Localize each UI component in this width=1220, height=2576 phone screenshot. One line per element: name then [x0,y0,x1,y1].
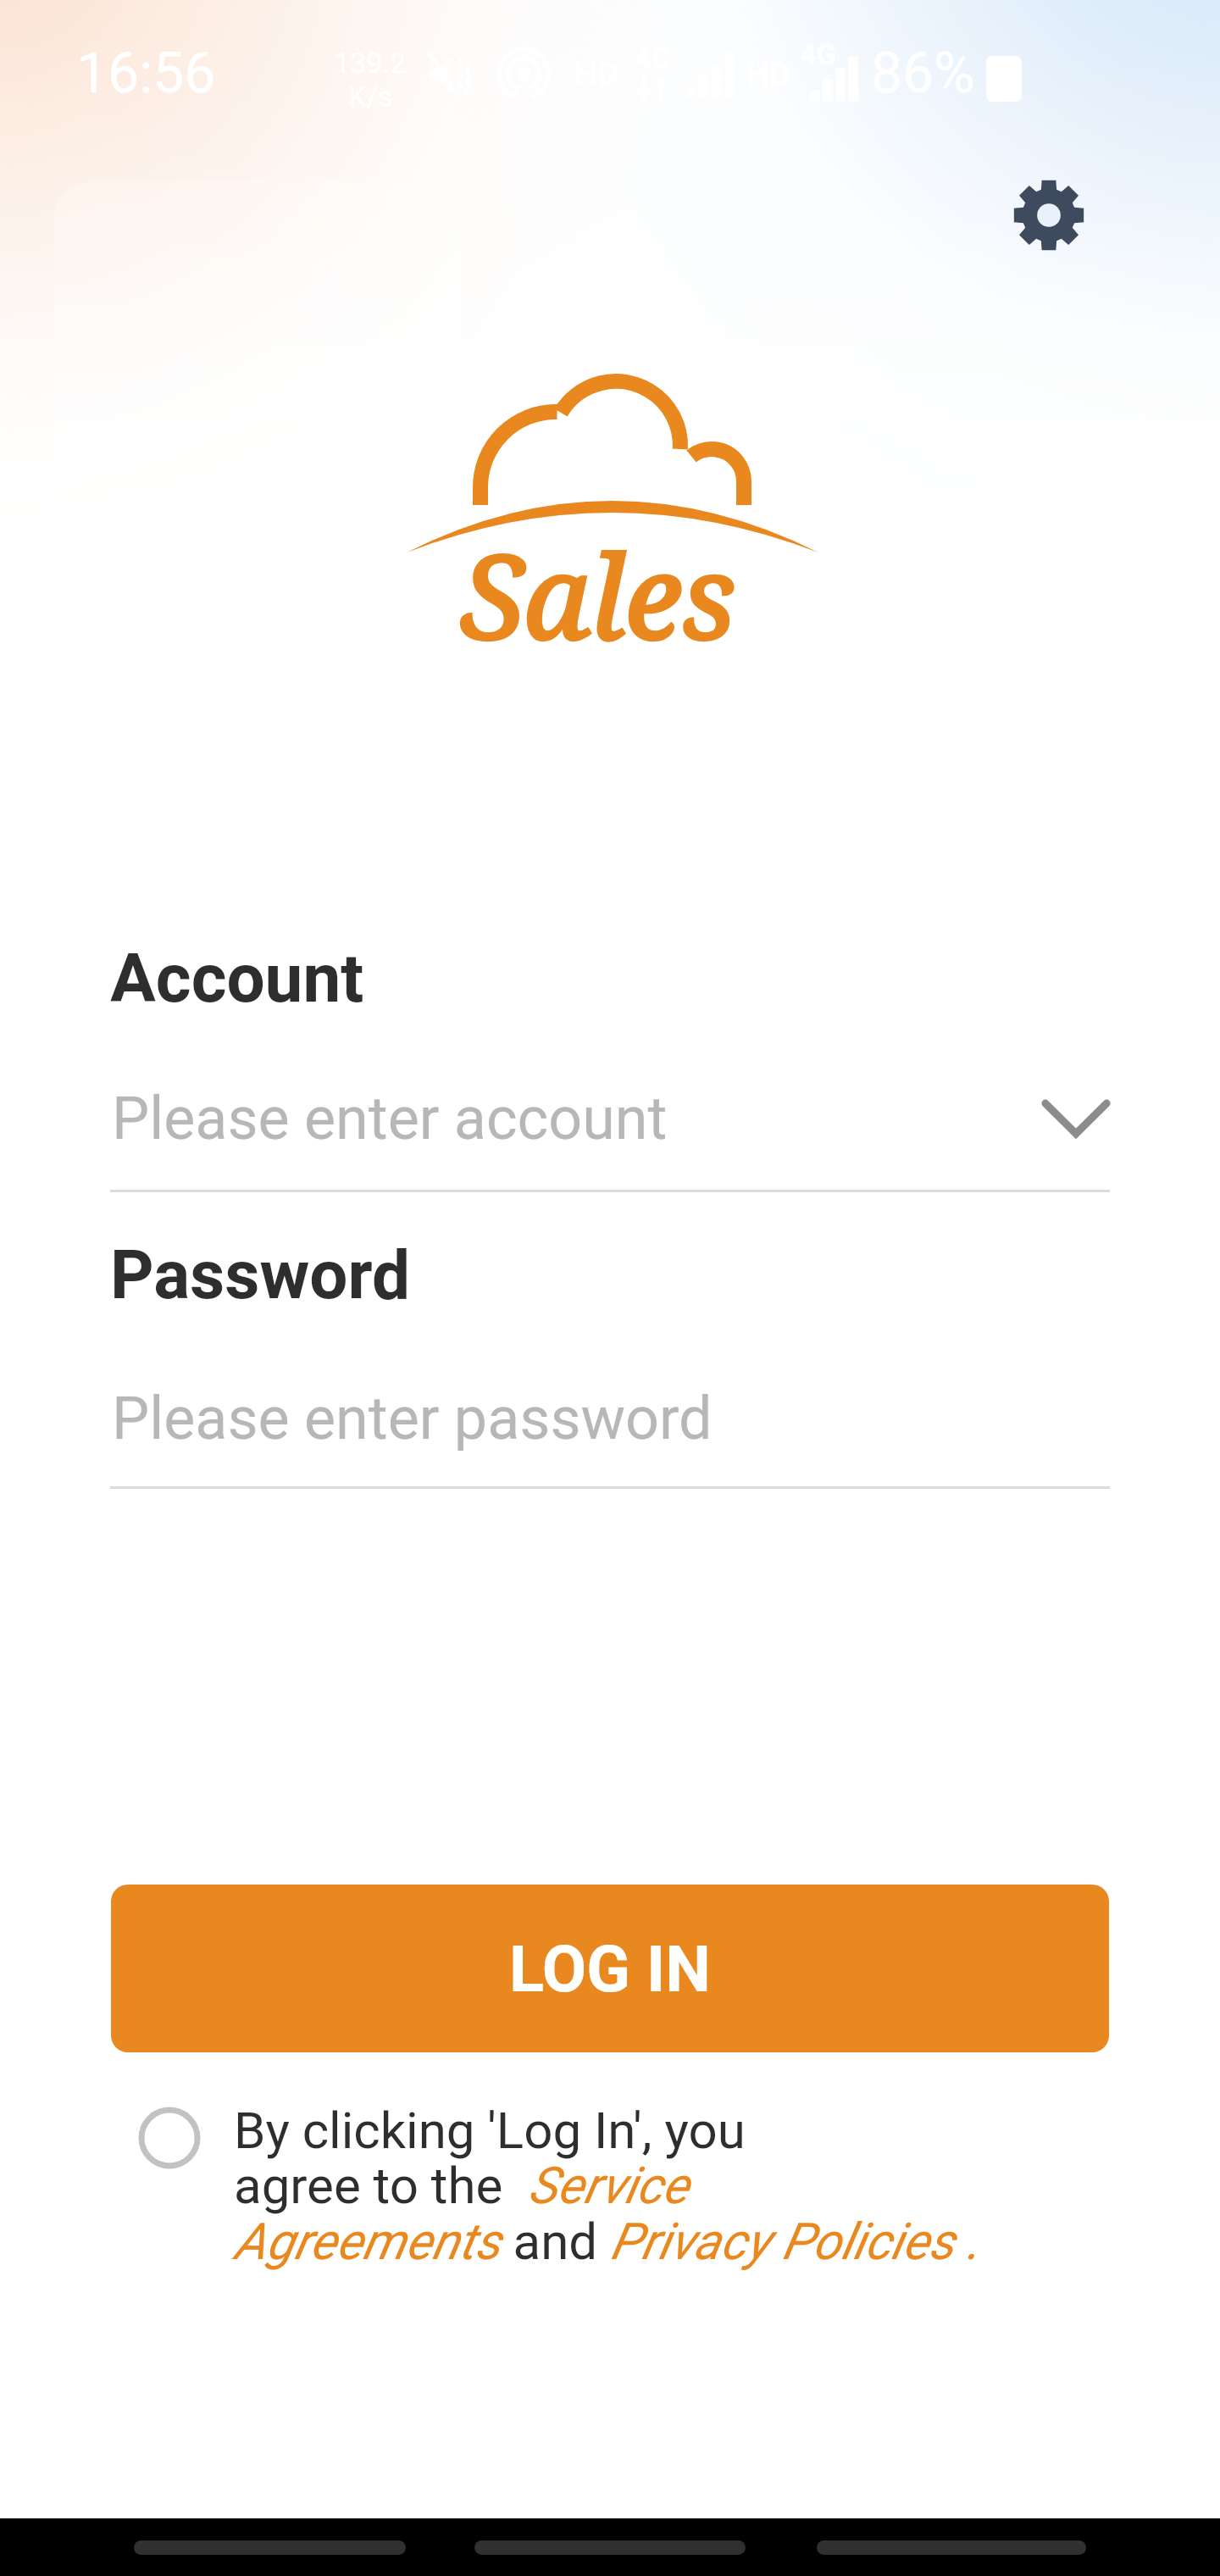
staticText: Password [110,1235,411,1315]
staticText: 86% [871,41,975,106]
button[interactable]: Agree to terms [132,2101,207,2175]
staticText: 16:56 [76,41,216,106]
staticText: 139.2 [334,46,407,80]
button[interactable]: LOG IN [111,1885,1109,2052]
staticText: 4G [800,37,836,71]
staticText: LOG IN [509,1931,711,2007]
button[interactable]: Please enter password [112,1369,1112,1467]
staticText: By clicking 'Log In', you agree to the S… [234,2101,1013,2272]
staticText: Sales [461,516,736,673]
staticText: K/s [348,80,393,114]
button[interactable]: Settings [1012,178,1086,253]
staticText: Please enter password [112,1384,713,1453]
staticText: Please enter account [112,1084,1040,1153]
staticText: Account [110,939,364,1019]
button[interactable]: Please enter account [112,1069,1112,1167]
